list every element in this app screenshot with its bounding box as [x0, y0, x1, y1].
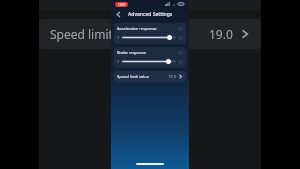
button[interactable]: Accelerator response	[114, 23, 186, 44]
staticText: 19.0	[209, 26, 233, 42]
staticText: 1	[117, 35, 120, 40]
button[interactable]: Speed limit value	[114, 71, 186, 82]
button[interactable]: Speed limit value	[39, 19, 261, 49]
staticText: Speed limit value	[117, 74, 150, 79]
staticText: Speed limit value	[50, 26, 147, 42]
button[interactable]: Back	[113, 9, 123, 19]
staticText: 19:51	[118, 3, 126, 7]
staticText: Brake response	[117, 50, 147, 55]
staticText: Accelerator response	[117, 26, 157, 31]
button[interactable]: Brake response	[114, 47, 186, 68]
staticText: 19.0	[168, 74, 176, 79]
staticText: Advanced Settings	[128, 11, 173, 18]
staticText: 1	[117, 59, 120, 64]
